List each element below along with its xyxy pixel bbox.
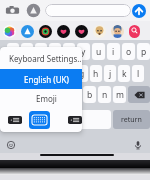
button[interactable]: l xyxy=(132,65,144,82)
button[interactable]: y xyxy=(77,43,90,60)
button[interactable]: App icon xyxy=(39,25,52,38)
button[interactable]: a xyxy=(19,65,32,82)
button[interactable]: App Store xyxy=(26,3,41,18)
staticText: b xyxy=(87,89,93,101)
staticText: r xyxy=(53,46,57,58)
staticText: h xyxy=(93,68,99,80)
button[interactable]: App icon xyxy=(3,25,16,38)
button[interactable]: Keyboard layout xyxy=(64,111,82,129)
staticText: i xyxy=(112,46,115,58)
button[interactable]: return xyxy=(113,110,150,129)
button[interactable]: Message field xyxy=(45,4,131,17)
button[interactable]: Backspace xyxy=(128,86,150,103)
button[interactable]: r xyxy=(49,43,61,60)
staticText: e xyxy=(39,46,44,58)
button[interactable]: i xyxy=(107,43,120,60)
staticText: 123 xyxy=(7,115,19,124)
button[interactable] xyxy=(39,110,111,129)
button[interactable]: Switch keyboard xyxy=(24,110,37,129)
staticText: j xyxy=(109,68,112,80)
button[interactable]: App icon xyxy=(129,25,140,38)
staticText: y xyxy=(81,46,86,58)
staticText: q xyxy=(10,46,16,58)
staticText: g xyxy=(79,68,85,80)
button[interactable]: w xyxy=(21,43,33,60)
button[interactable]: k xyxy=(118,65,130,82)
staticText: w xyxy=(24,46,31,58)
button[interactable]: o xyxy=(122,43,135,60)
staticText: t xyxy=(67,46,71,58)
staticText: p xyxy=(141,46,147,58)
staticText: a xyxy=(23,68,28,80)
button[interactable]: x xyxy=(38,86,51,103)
button[interactable]: App icon xyxy=(111,25,124,38)
button[interactable]: App icon xyxy=(75,25,88,38)
button[interactable]: Keyboard layout xyxy=(4,111,25,129)
staticText: u xyxy=(96,46,102,58)
staticText: m xyxy=(116,89,124,101)
button[interactable]: s xyxy=(34,65,46,82)
staticText: English (UK) xyxy=(24,74,69,85)
button[interactable]: App icon xyxy=(21,25,34,38)
button[interactable]: e xyxy=(35,43,47,60)
staticText: l xyxy=(137,68,140,80)
staticText: return xyxy=(121,115,142,125)
staticText: f xyxy=(67,68,70,80)
button[interactable]: z xyxy=(24,86,36,103)
button[interactable]: English (UK) xyxy=(0,69,82,89)
button[interactable]: Camera xyxy=(5,3,20,18)
button[interactable]: App icon xyxy=(57,25,70,38)
button[interactable]: Emoji xyxy=(7,141,15,149)
staticText: k xyxy=(122,68,127,80)
button[interactable]: n xyxy=(98,86,111,103)
staticText: x xyxy=(42,89,47,101)
button[interactable]: q xyxy=(7,43,19,60)
button[interactable]: Keyboard layout xyxy=(29,111,50,129)
button[interactable]: f xyxy=(62,65,74,82)
button[interactable]: d xyxy=(48,65,60,82)
button[interactable]: Send xyxy=(132,4,146,18)
button[interactable]: App icon xyxy=(93,25,106,38)
staticText: Emoji xyxy=(36,93,57,104)
button[interactable]: Emoji xyxy=(0,89,82,108)
staticText: d xyxy=(51,68,57,80)
button[interactable]: 123 xyxy=(3,110,22,129)
button[interactable]: c xyxy=(53,86,66,103)
staticText: s xyxy=(38,68,43,80)
button[interactable]: Dictation xyxy=(133,140,143,150)
button[interactable]: Shift xyxy=(3,86,22,103)
button[interactable]: t xyxy=(63,43,75,60)
button[interactable]: g xyxy=(76,65,88,82)
button[interactable]: m xyxy=(113,86,126,103)
button[interactable]: p xyxy=(137,43,150,60)
button[interactable]: Keyboard Settings... xyxy=(0,47,82,69)
button[interactable]: u xyxy=(92,43,105,60)
button[interactable]: j xyxy=(104,65,116,82)
button[interactable]: v xyxy=(68,86,81,103)
staticText: Keyboard Settings... xyxy=(9,53,82,64)
staticText: o xyxy=(126,46,132,58)
button[interactable]: h xyxy=(90,65,102,82)
staticText: n xyxy=(102,89,108,101)
button[interactable]: b xyxy=(83,86,96,103)
